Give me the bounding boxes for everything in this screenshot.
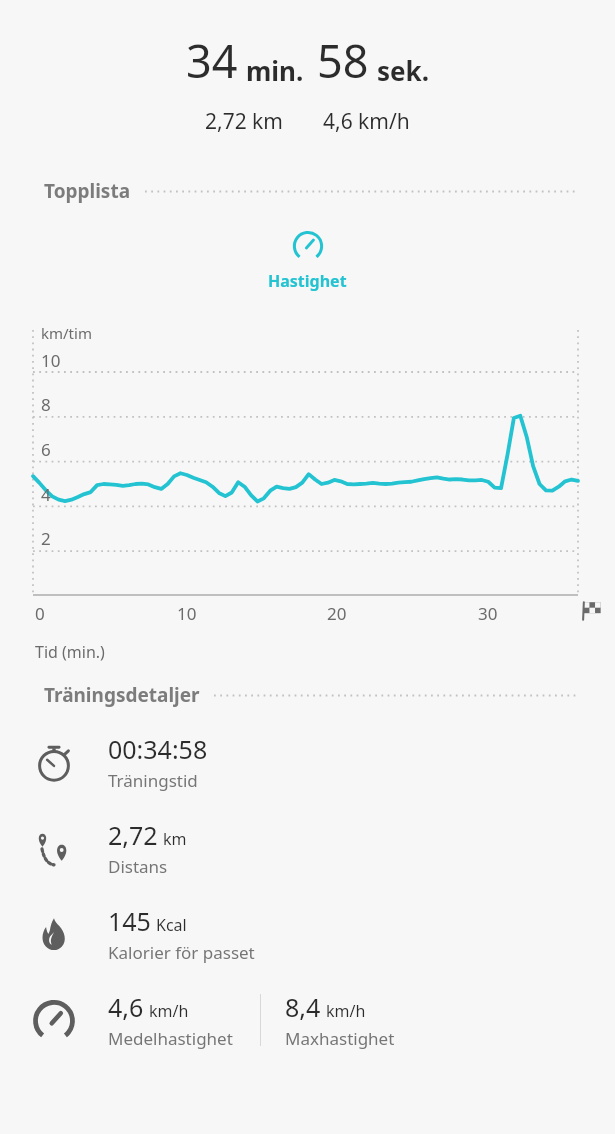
staticText: km/h (149, 1000, 189, 1022)
button[interactable]: Distance (0, 818, 615, 878)
staticText: sek. (377, 53, 430, 88)
staticText: 0 (35, 602, 45, 625)
staticText: min. (246, 53, 304, 88)
staticText: 58 (317, 30, 369, 91)
staticText: Maxhastighet (285, 1027, 395, 1050)
staticText: Distans (108, 855, 168, 878)
other: Finish (580, 600, 604, 622)
staticText: 34 (186, 30, 238, 91)
staticText: 10 (177, 602, 197, 625)
other: Average speed (30, 999, 78, 1041)
button[interactable]: Workout time (0, 732, 615, 792)
button[interactable]: Average speed (0, 990, 615, 1050)
button[interactable]: Hastighet (0, 230, 615, 292)
staticText: 4,6 (108, 990, 144, 1024)
staticText: 4,6 km/h (323, 107, 410, 136)
staticText: 10 (41, 349, 61, 372)
button[interactable]: Calories (0, 904, 615, 964)
staticText: 8 (41, 393, 51, 416)
other: Calories (30, 910, 78, 958)
staticText: 20 (327, 602, 347, 625)
staticText: km/tim (41, 323, 92, 343)
staticText: km (163, 828, 187, 850)
staticText: Kalorier för passet (108, 941, 255, 964)
staticText: 30 (478, 602, 498, 625)
staticText: 2 (41, 527, 51, 550)
staticText: 4 (41, 483, 51, 506)
staticText: 6 (41, 438, 51, 461)
staticText: Tid (min.) (35, 641, 105, 663)
staticText: Träningsdetaljer (44, 682, 200, 708)
staticText: Hastighet (268, 270, 347, 292)
staticText: 00:34:58 (108, 732, 208, 766)
staticText: Medelhastighet (108, 1027, 233, 1050)
staticText: Topplista (44, 178, 131, 204)
staticText: 2,72 (108, 818, 158, 852)
staticText: km/h (326, 1000, 366, 1022)
other: Distance (30, 824, 78, 872)
other: Workout time (30, 738, 78, 786)
staticText: Träningstid (108, 769, 198, 792)
staticText: 145 (108, 904, 151, 938)
staticText: 2,72 km (205, 107, 283, 136)
staticText: Kcal (156, 914, 187, 936)
staticText: 8,4 (285, 990, 321, 1024)
